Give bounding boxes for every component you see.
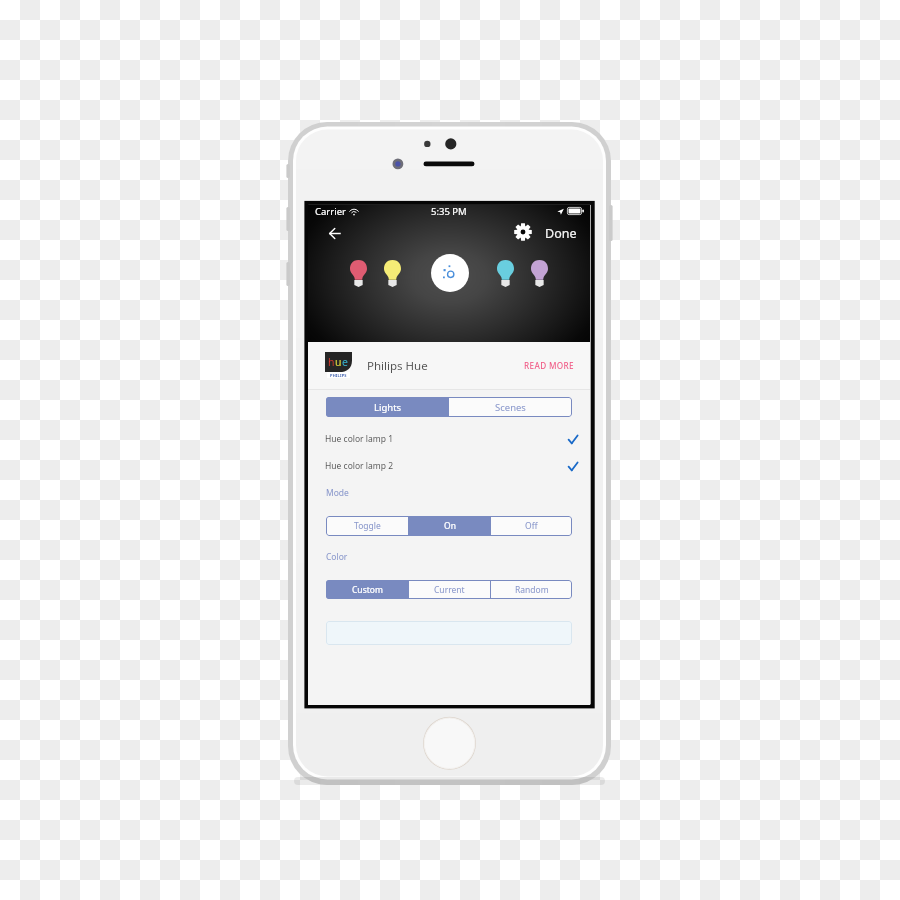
button[interactable]: Current: [409, 580, 490, 599]
button[interactable]: Back: [324, 222, 346, 244]
staticText: Hue color lamp 1: [325, 433, 394, 445]
staticText: 5:35 PM: [431, 205, 467, 217]
button[interactable]: On: [409, 516, 490, 536]
button[interactable]: Random: [491, 580, 572, 599]
staticText: Mode: [326, 487, 349, 499]
staticText: Done: [545, 225, 577, 242]
staticText: READ MORE: [524, 360, 575, 371]
button[interactable]: Lights: [326, 397, 449, 417]
staticText: e: [342, 355, 348, 369]
button[interactable]: Hue color lamp 1: [308, 429, 590, 449]
button[interactable]: Off: [491, 516, 572, 536]
staticText: Scenes: [495, 401, 526, 414]
button[interactable]: Custom: [326, 580, 408, 599]
button[interactable]: Hue color lamp 2: [308, 456, 590, 476]
staticText: Off: [525, 520, 538, 532]
staticText: Custom: [352, 584, 383, 596]
staticText: PHILIPS: [330, 373, 347, 378]
staticText: Random: [515, 584, 549, 596]
button[interactable]: Hue light: [431, 254, 469, 292]
button[interactable]: Light bulb: [384, 260, 401, 287]
staticText: On: [444, 520, 456, 532]
staticText: Current: [434, 584, 465, 596]
button[interactable]: Scenes: [449, 397, 572, 417]
staticText: h: [328, 355, 335, 369]
button[interactable]: Toggle: [326, 516, 408, 536]
staticText: Lights: [374, 401, 402, 414]
button[interactable]: Done: [545, 223, 577, 243]
staticText: Color: [326, 551, 348, 563]
button[interactable]: Light bulb: [497, 260, 514, 287]
staticText: Carrier: [315, 205, 346, 217]
staticText: u: [335, 355, 342, 369]
staticText: Toggle: [354, 520, 381, 532]
button[interactable]: Light bulb: [531, 260, 548, 287]
button[interactable]: [326, 621, 572, 645]
button[interactable]: READ MORE: [522, 358, 577, 373]
staticText: Hue color lamp 2: [325, 460, 394, 472]
button[interactable]: Light bulb: [350, 260, 367, 287]
staticText: Philips Hue: [367, 358, 428, 374]
button[interactable]: Settings: [512, 221, 534, 243]
